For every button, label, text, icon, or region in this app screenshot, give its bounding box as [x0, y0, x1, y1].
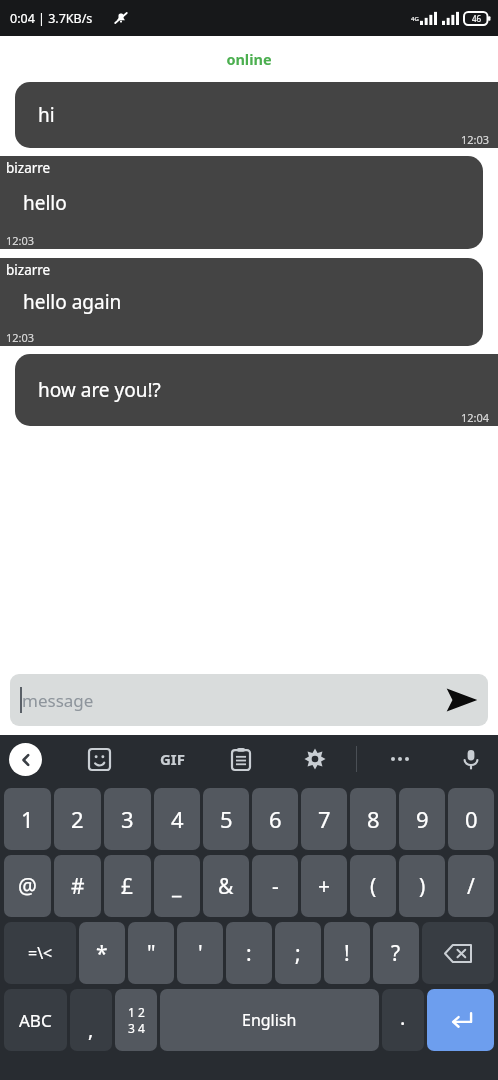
staticText: 46 [472, 13, 482, 24]
button[interactable]: bizarre [0, 258, 483, 346]
button[interactable]: 1 [4, 788, 51, 850]
button[interactable]: bizarre [0, 156, 483, 249]
button[interactable]: + [301, 855, 347, 917]
button[interactable]: =\< [4, 922, 76, 984]
staticText: 2 [71, 804, 84, 834]
staticText: 4 [171, 804, 184, 834]
staticText: : [246, 939, 252, 968]
staticText: hi [38, 102, 55, 128]
button[interactable]: ( [350, 855, 396, 917]
staticText: 3 4 [128, 1020, 145, 1036]
staticText: ( [370, 872, 377, 901]
button[interactable]: . [382, 989, 424, 1051]
staticText: 7 [318, 804, 331, 834]
button[interactable]: ABC [4, 989, 67, 1051]
staticText: online [226, 49, 272, 69]
staticText: " [147, 939, 156, 968]
staticText: 0 [465, 804, 478, 834]
button[interactable]: Settings [299, 743, 331, 775]
staticText: * [96, 939, 108, 968]
staticText: 5 [220, 804, 233, 834]
button[interactable]: 4 [154, 788, 200, 850]
button[interactable]: - [252, 855, 298, 917]
button[interactable]: £ [104, 855, 151, 917]
staticText: 8 [367, 804, 380, 834]
button[interactable]: GIF [152, 739, 192, 779]
staticText: 1 [21, 804, 34, 834]
button[interactable]: 9 [399, 788, 445, 850]
staticText: . [400, 1004, 406, 1031]
staticText: hello again [23, 289, 122, 315]
staticText: 6 [269, 804, 282, 834]
staticText: - [272, 872, 279, 901]
staticText: ) [419, 872, 426, 901]
button[interactable]: & [203, 855, 249, 917]
staticText: bizarre [6, 261, 51, 279]
staticText: 3 [121, 804, 134, 834]
staticText: English [242, 1009, 297, 1031]
staticText: =\< [28, 942, 53, 964]
button[interactable]: ) [399, 855, 445, 917]
button[interactable]: Send [436, 674, 488, 726]
button[interactable]: 7 [301, 788, 347, 850]
staticText: ? [391, 939, 401, 968]
button[interactable]: Clipboard [226, 744, 256, 774]
button[interactable]: " [128, 922, 174, 984]
staticText: GIF [160, 749, 185, 769]
staticText: @ [18, 872, 37, 901]
button[interactable]: 5 [203, 788, 249, 850]
button[interactable]: 1 2 [115, 989, 157, 1051]
staticText: + [318, 872, 331, 901]
button[interactable]: ! [324, 922, 370, 984]
button[interactable]: @ [4, 855, 51, 917]
staticText: 12:04 [461, 410, 490, 425]
button[interactable]: 8 [350, 788, 396, 850]
button[interactable]: English [160, 989, 379, 1051]
button[interactable]: 6 [252, 788, 298, 850]
button[interactable]: * [79, 922, 125, 984]
staticText: / [467, 872, 475, 901]
staticText: ' [198, 939, 203, 968]
staticText: how are you!? [38, 377, 161, 403]
staticText: 4G [411, 15, 419, 23]
staticText: 9 [416, 804, 429, 834]
button[interactable]: , [70, 989, 112, 1051]
staticText: £ [121, 872, 134, 901]
button[interactable]: ? [373, 922, 419, 984]
staticText: bizarre [6, 159, 51, 177]
button[interactable]: / [448, 855, 494, 917]
staticText: # [71, 872, 85, 901]
staticText: , [88, 1016, 94, 1043]
button[interactable]: ' [177, 922, 223, 984]
staticText: ABC [19, 1009, 52, 1032]
staticText: 0:04 | 3.7KB/s [10, 10, 93, 27]
button[interactable]: Stickers [84, 744, 114, 774]
button[interactable]: 2 [54, 788, 101, 850]
staticText: ; [295, 939, 301, 968]
button[interactable]: Backspace [422, 922, 494, 984]
button[interactable]: how are you!? [15, 354, 498, 426]
button[interactable]: Enter [427, 989, 494, 1051]
button[interactable]: More options [383, 742, 417, 776]
button[interactable]: hi [15, 82, 498, 148]
button[interactable]: : [226, 922, 272, 984]
button[interactable]: message [10, 687, 436, 713]
staticText: message [22, 689, 94, 712]
staticText: 12:03 [6, 330, 35, 345]
button[interactable]: 0 [448, 788, 494, 850]
staticText: 1 2 [128, 1004, 145, 1020]
button[interactable]: Voice input [456, 744, 486, 774]
staticText: 12:03 [6, 233, 35, 248]
staticText: hello [23, 190, 67, 216]
staticText: 12:03 [461, 132, 490, 147]
staticText: ! [344, 939, 350, 968]
button[interactable]: _ [154, 855, 200, 917]
button[interactable]: 3 [104, 788, 151, 850]
staticText: _ [172, 872, 182, 901]
button[interactable]: Back [9, 743, 42, 776]
button[interactable]: ; [275, 922, 321, 984]
staticText: & [218, 872, 234, 901]
button[interactable]: # [54, 855, 101, 917]
